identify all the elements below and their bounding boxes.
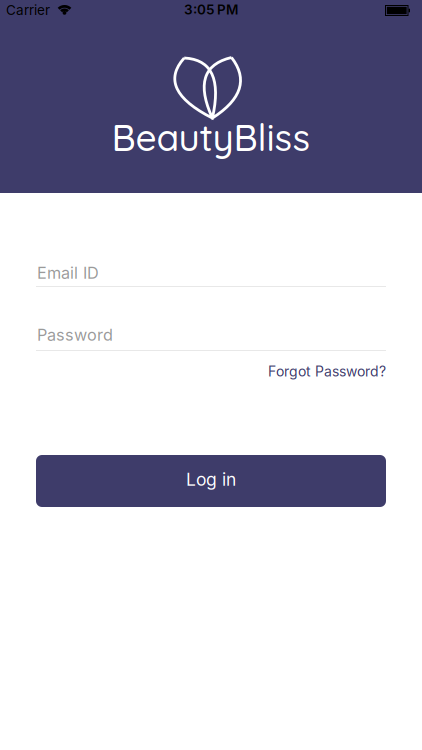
staticText: Email ID [37, 263, 99, 283]
staticText: BeautyBliss [111, 114, 310, 160]
staticText: Carrier [6, 2, 50, 18]
staticText: 3:05 PM [184, 1, 238, 18]
staticText: Password [37, 325, 113, 345]
staticText: Forgot Password? [268, 363, 386, 380]
staticText: Log in [186, 469, 236, 490]
